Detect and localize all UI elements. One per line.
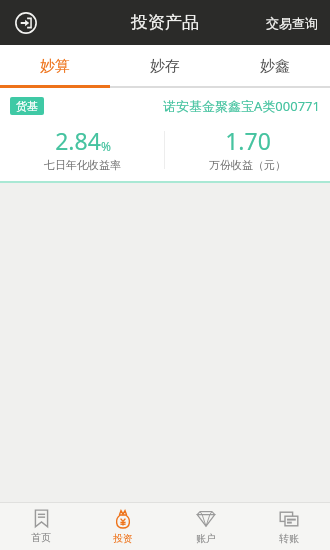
button[interactable]: Exit	[8, 5, 44, 41]
staticText: 诺安基金聚鑫宝A类000771	[163, 97, 320, 115]
staticText: 妙存	[150, 57, 180, 76]
button[interactable]: 妙算	[0, 45, 110, 88]
staticText: 投资	[113, 532, 133, 545]
staticText: 转账	[279, 532, 299, 545]
staticText: 2.84	[55, 125, 101, 156]
button[interactable]: 交易查询	[254, 7, 330, 39]
staticText: 妙鑫	[260, 57, 290, 76]
staticText: %	[101, 138, 111, 154]
staticText: 万份收益（元）	[209, 158, 286, 172]
staticText: 七日年化收益率	[44, 158, 121, 172]
staticText: 妙算	[40, 57, 70, 76]
button[interactable]: 货基	[0, 88, 330, 183]
button[interactable]: 账户	[164, 503, 247, 550]
staticText: 交易查询	[266, 15, 318, 31]
staticText: 首页	[31, 531, 51, 544]
button[interactable]: 投资	[82, 503, 164, 550]
staticText: 投资产品	[131, 12, 199, 33]
button[interactable]: 妙鑫	[220, 45, 330, 88]
button[interactable]: 妙存	[110, 45, 220, 88]
button[interactable]: 首页	[0, 503, 82, 550]
staticText: 货基	[16, 99, 38, 113]
staticText: 账户	[196, 532, 216, 545]
staticText: 1.70	[225, 125, 271, 156]
button[interactable]: 转账	[247, 503, 330, 550]
